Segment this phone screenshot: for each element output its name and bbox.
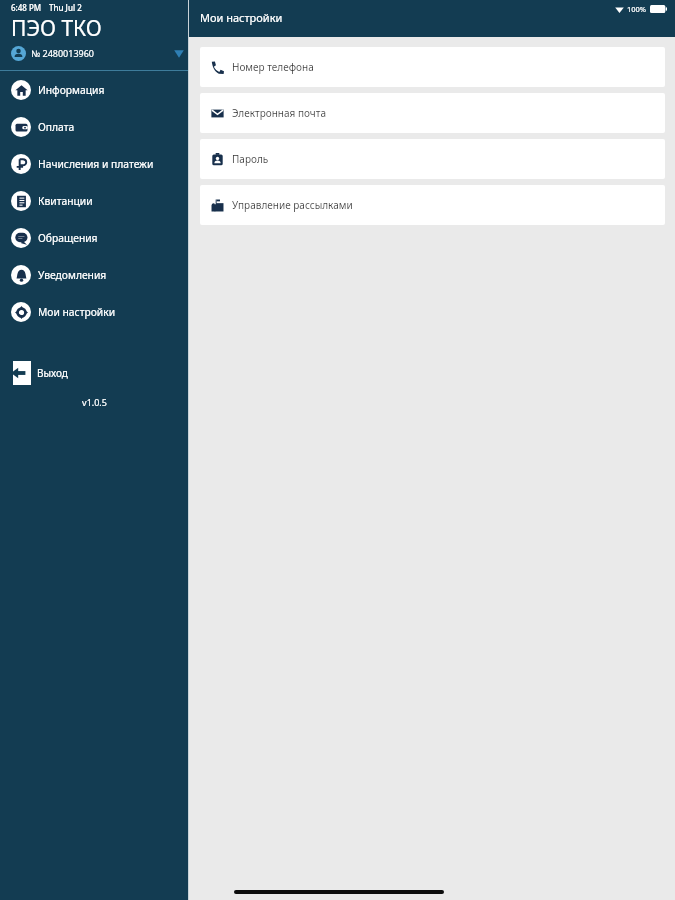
- staticText: Начисления и платежи: [38, 157, 154, 171]
- staticText: Квитанции: [38, 194, 93, 208]
- button[interactable]: Квитанции: [0, 182, 189, 219]
- staticText: Уведомления: [38, 268, 107, 282]
- button[interactable]: Оплата: [0, 108, 189, 145]
- staticText: Номер телефона: [232, 60, 314, 74]
- staticText: Обращения: [38, 231, 98, 245]
- staticText: Мои настройки: [38, 305, 116, 319]
- staticText: ПЭО ТКО: [11, 14, 102, 38]
- staticText: Мои настройки: [200, 10, 283, 25]
- staticText: № 2480013960: [31, 47, 95, 59]
- other: Change account: [174, 49, 184, 58]
- staticText: Пароль: [232, 152, 269, 166]
- button[interactable]: Обращения: [0, 219, 189, 256]
- staticText: Электронная почта: [232, 106, 326, 120]
- button[interactable]: Пароль: [200, 139, 665, 179]
- button[interactable]: № 2480013960: [0, 42, 189, 64]
- staticText: v1.0.5: [0, 396, 189, 408]
- staticText: Выход: [37, 366, 68, 380]
- staticText: 6:48 PM: [11, 2, 42, 13]
- button[interactable]: Информация: [0, 71, 189, 108]
- staticText: Оплата: [38, 120, 75, 134]
- staticText: Thu Jul 2: [49, 2, 82, 13]
- staticText: Управление рассылками: [232, 198, 353, 212]
- button[interactable]: Мои настройки: [0, 293, 189, 330]
- button[interactable]: Управление рассылками: [200, 185, 665, 225]
- button[interactable]: Номер телефона: [200, 47, 665, 87]
- button[interactable]: Начисления и платежи: [0, 145, 189, 182]
- button[interactable]: Электронная почта: [200, 93, 665, 133]
- staticText: Информация: [38, 83, 105, 97]
- button[interactable]: Уведомления: [0, 256, 189, 293]
- button[interactable]: Выход: [0, 360, 189, 386]
- staticText: 100%: [627, 4, 647, 14]
